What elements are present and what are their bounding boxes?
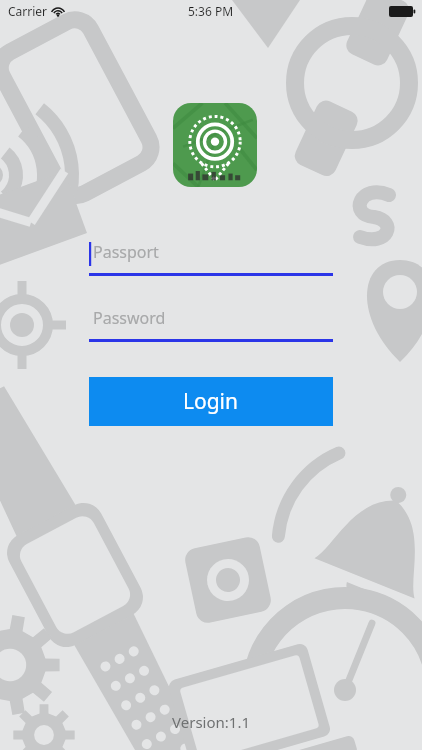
staticText: Login [183,387,239,416]
button[interactable]: Passport [89,240,333,276]
staticText: Version:1.1 [172,712,250,732]
button[interactable]: Password [89,306,333,342]
button[interactable]: Login [89,377,333,426]
staticText: Carrier [8,3,48,19]
staticText: Password [93,307,166,329]
staticText: Passport [93,241,159,263]
staticText: 5:36 PM [188,3,234,19]
